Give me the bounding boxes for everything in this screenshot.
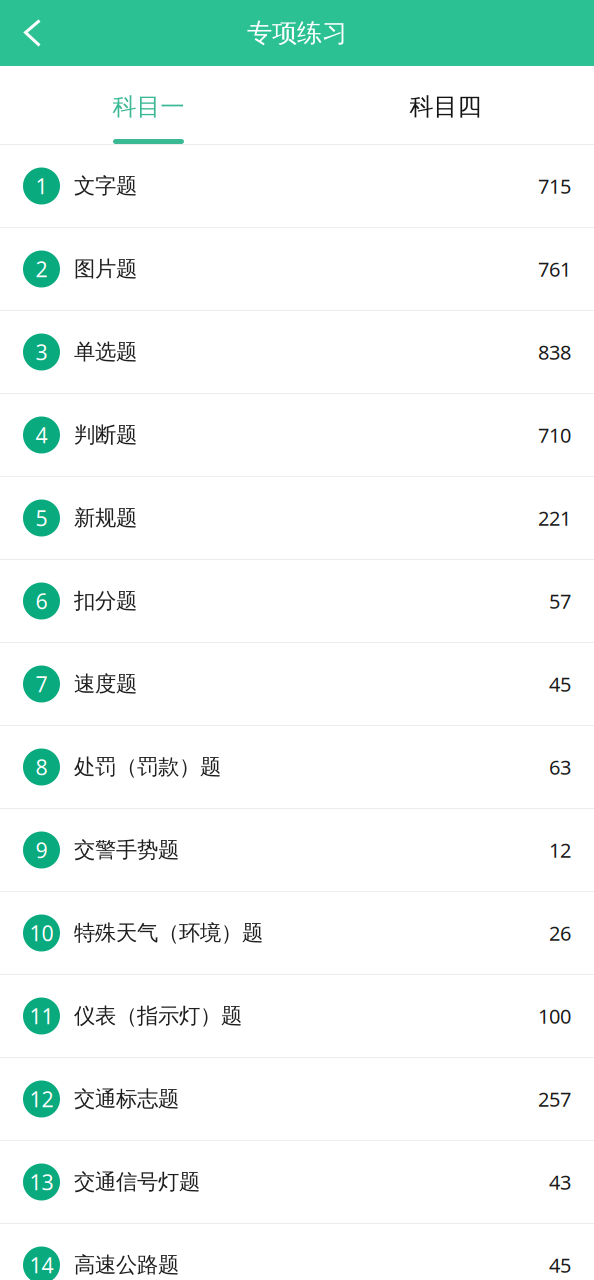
staticText: 7 xyxy=(35,670,47,698)
staticText: 5 xyxy=(35,504,47,532)
button[interactable]: 8 xyxy=(0,726,594,808)
staticText: 高速公路题 xyxy=(74,1252,179,1278)
staticText: 6 xyxy=(35,587,47,615)
staticText: 2 xyxy=(35,255,47,283)
button[interactable]: 科目四 xyxy=(297,66,594,144)
staticText: 11 xyxy=(29,1002,53,1030)
button[interactable]: 2 xyxy=(0,228,594,310)
staticText: 26 xyxy=(549,920,571,946)
staticText: 761 xyxy=(538,256,571,282)
button[interactable]: 科目一 xyxy=(0,66,297,144)
staticText: 12 xyxy=(549,837,571,863)
button[interactable]: 10 xyxy=(0,892,594,974)
staticText: 12 xyxy=(29,1085,53,1113)
staticText: 文字题 xyxy=(74,173,137,199)
button[interactable]: 12 xyxy=(0,1058,594,1140)
button[interactable]: 7 xyxy=(0,643,594,725)
staticText: 1 xyxy=(35,172,47,200)
staticText: 45 xyxy=(549,1252,571,1278)
button[interactable]: Back xyxy=(0,0,64,66)
staticText: 57 xyxy=(549,588,571,614)
button[interactable]: 11 xyxy=(0,975,594,1057)
staticText: 交警手势题 xyxy=(74,837,179,863)
button[interactable]: 6 xyxy=(0,560,594,642)
staticText: 715 xyxy=(538,173,571,199)
staticText: 3 xyxy=(35,338,47,366)
button[interactable]: 4 xyxy=(0,394,594,476)
staticText: 图片题 xyxy=(74,256,137,282)
button[interactable]: 3 xyxy=(0,311,594,393)
button[interactable]: 1 xyxy=(0,145,594,227)
button[interactable]: 9 xyxy=(0,809,594,891)
staticText: 仪表（指示灯）题 xyxy=(74,1003,242,1029)
button[interactable]: 13 xyxy=(0,1141,594,1223)
staticText: 单选题 xyxy=(74,339,137,365)
staticText: 交通信号灯题 xyxy=(74,1169,200,1195)
staticText: 新规题 xyxy=(74,505,137,531)
staticText: 科目一 xyxy=(112,92,184,121)
staticText: 扣分题 xyxy=(74,588,137,614)
staticText: 8 xyxy=(35,753,47,781)
staticText: 处罚（罚款）题 xyxy=(74,754,221,780)
staticText: 710 xyxy=(538,422,571,448)
staticText: 43 xyxy=(549,1169,571,1195)
staticText: 45 xyxy=(549,671,571,697)
staticText: 63 xyxy=(549,754,571,780)
staticText: 特殊天气（环境）题 xyxy=(74,920,263,946)
staticText: 13 xyxy=(29,1168,53,1196)
staticText: 10 xyxy=(29,919,53,947)
staticText: 交通标志题 xyxy=(74,1086,179,1112)
staticText: 9 xyxy=(35,836,47,864)
button[interactable]: 14 xyxy=(0,1224,594,1280)
staticText: 221 xyxy=(538,505,571,531)
staticText: 专项练习 xyxy=(247,17,347,48)
staticText: 4 xyxy=(35,421,47,449)
staticText: 100 xyxy=(538,1003,571,1029)
button[interactable]: 5 xyxy=(0,477,594,559)
staticText: 14 xyxy=(29,1251,53,1279)
staticText: 838 xyxy=(538,339,571,365)
staticText: 判断题 xyxy=(74,422,137,448)
staticText: 速度题 xyxy=(74,671,137,697)
staticText: 科目四 xyxy=(409,92,481,121)
staticText: 257 xyxy=(538,1086,571,1112)
